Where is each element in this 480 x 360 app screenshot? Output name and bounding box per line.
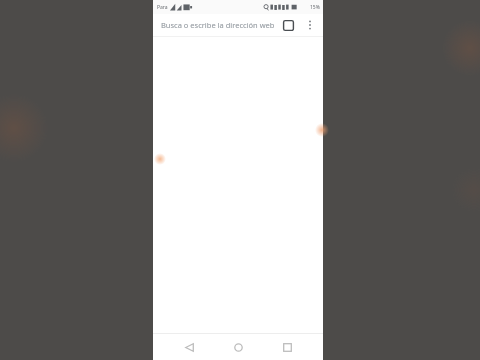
button[interactable]: Back: [176, 334, 202, 360]
button[interactable]: Recent apps: [274, 334, 300, 360]
button[interactable]: Busca o escribe la dirección web: [153, 14, 277, 36]
button[interactable]: Home: [225, 334, 251, 360]
staticText: 15%: [310, 4, 320, 11]
staticText: Busca o escribe la dirección web: [161, 20, 275, 30]
button[interactable]: Tabs: [277, 14, 299, 36]
button[interactable]: More options: [299, 14, 321, 36]
staticText: Para: [157, 4, 168, 11]
